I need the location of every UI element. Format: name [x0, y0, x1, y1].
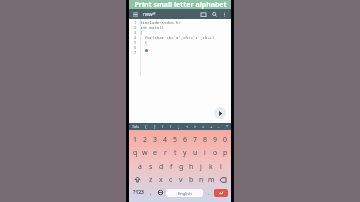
button[interactable]: 5 [170, 134, 180, 145]
button[interactable]: d [156, 161, 166, 172]
staticText: 1 [133, 135, 138, 145]
staticText: new* [143, 11, 156, 18]
button[interactable]: ; [175, 123, 183, 130]
staticText: + [210, 124, 213, 129]
button[interactable]: f [166, 161, 176, 172]
button[interactable]: t [170, 147, 180, 158]
button[interactable]: u [190, 147, 200, 158]
button[interactable]: 1 [130, 134, 140, 145]
staticText: , [150, 189, 152, 197]
staticText: 7 [134, 50, 137, 55]
staticText: m [208, 175, 215, 185]
button[interactable]: 2 [140, 134, 150, 145]
staticText: b [189, 175, 194, 185]
button[interactable]: Shift [130, 174, 145, 185]
button[interactable]: - [215, 123, 223, 130]
staticText: for(char ch='a';ch<='z';ch++) [140, 35, 215, 40]
staticText: { [145, 124, 147, 129]
staticText: 6 [134, 45, 137, 50]
button[interactable]: Tab [129, 123, 141, 130]
staticText: w [142, 148, 148, 158]
button[interactable]: = [199, 123, 207, 130]
button[interactable]: v [176, 174, 186, 185]
staticText: Print small letter alphabet [134, 0, 227, 9]
button[interactable]: ) [167, 123, 175, 130]
staticText: 0 [223, 135, 228, 145]
staticText: 6 [183, 135, 188, 145]
button[interactable]: 9 [210, 134, 220, 145]
staticText: j [200, 162, 202, 172]
staticText: v [179, 175, 183, 185]
button[interactable]: 0 [220, 134, 230, 145]
staticText: 5 [134, 40, 137, 45]
button[interactable]: q [130, 147, 140, 158]
button[interactable]: i [200, 147, 210, 158]
staticText: * [226, 124, 229, 129]
button[interactable]: . [204, 187, 213, 198]
button[interactable]: } [150, 123, 159, 130]
staticText: x [159, 175, 163, 185]
button[interactable]: l [216, 161, 226, 172]
staticText: 1 [134, 20, 137, 25]
button[interactable]: j [196, 161, 206, 172]
button[interactable]: 8 [200, 134, 210, 145]
button[interactable]: ?123 [131, 187, 146, 198]
button[interactable]: s [145, 161, 156, 172]
button[interactable]: 3 [150, 134, 160, 145]
button[interactable]: m [206, 174, 216, 185]
button[interactable]: English [166, 189, 203, 197]
staticText: < [186, 124, 189, 129]
button[interactable]: Change language [155, 187, 165, 198]
staticText: #include<stdio.h> [140, 20, 181, 25]
button[interactable]: > [191, 123, 199, 130]
button[interactable]: h [186, 161, 196, 172]
button[interactable]: x [156, 174, 166, 185]
staticText: l [220, 162, 222, 172]
button[interactable]: * [223, 123, 231, 130]
staticText: g [179, 162, 184, 172]
button[interactable]: Backspace [216, 174, 230, 185]
button[interactable]: 7 [190, 134, 200, 145]
button[interactable]: 6 [180, 134, 190, 145]
button[interactable]: Open file [199, 10, 207, 18]
button[interactable]: o [210, 147, 220, 158]
staticText: > [194, 124, 197, 129]
button[interactable]: k [206, 161, 216, 172]
button[interactable]: { [141, 123, 150, 130]
button[interactable]: Enter [214, 189, 228, 197]
staticText: { [140, 30, 143, 35]
staticText: r [164, 148, 167, 158]
button[interactable]: 4 [160, 134, 170, 145]
button[interactable]: e [150, 147, 160, 158]
button[interactable]: b [186, 174, 196, 185]
staticText: English [178, 191, 192, 196]
button[interactable]: r [160, 147, 170, 158]
button[interactable]: a [134, 161, 145, 172]
button[interactable]: w [140, 147, 150, 158]
button[interactable]: Menu [132, 11, 139, 18]
staticText: o [213, 148, 218, 158]
staticText: 3 [153, 135, 158, 145]
button[interactable]: , [146, 187, 155, 198]
button[interactable]: ( [159, 123, 167, 130]
button[interactable]: More options [220, 10, 228, 18]
button[interactable]: z [145, 174, 156, 185]
staticText: d [159, 162, 164, 172]
staticText: z [149, 175, 153, 185]
button[interactable]: Run [214, 107, 226, 119]
button[interactable]: p [220, 147, 230, 158]
staticText: int main() [140, 25, 164, 30]
button[interactable]: g [176, 161, 186, 172]
button[interactable]: Search [210, 10, 218, 18]
staticText: u [193, 148, 198, 158]
button[interactable]: y [180, 147, 190, 158]
staticText: ; [178, 124, 180, 129]
staticText: . [208, 189, 210, 197]
button[interactable]: < [183, 123, 191, 130]
staticText: = [202, 124, 205, 129]
staticText: { [140, 40, 148, 45]
button[interactable]: n [196, 174, 206, 185]
button[interactable]: + [207, 123, 215, 130]
button[interactable]: c [166, 174, 176, 185]
staticText: 2 [134, 25, 137, 30]
